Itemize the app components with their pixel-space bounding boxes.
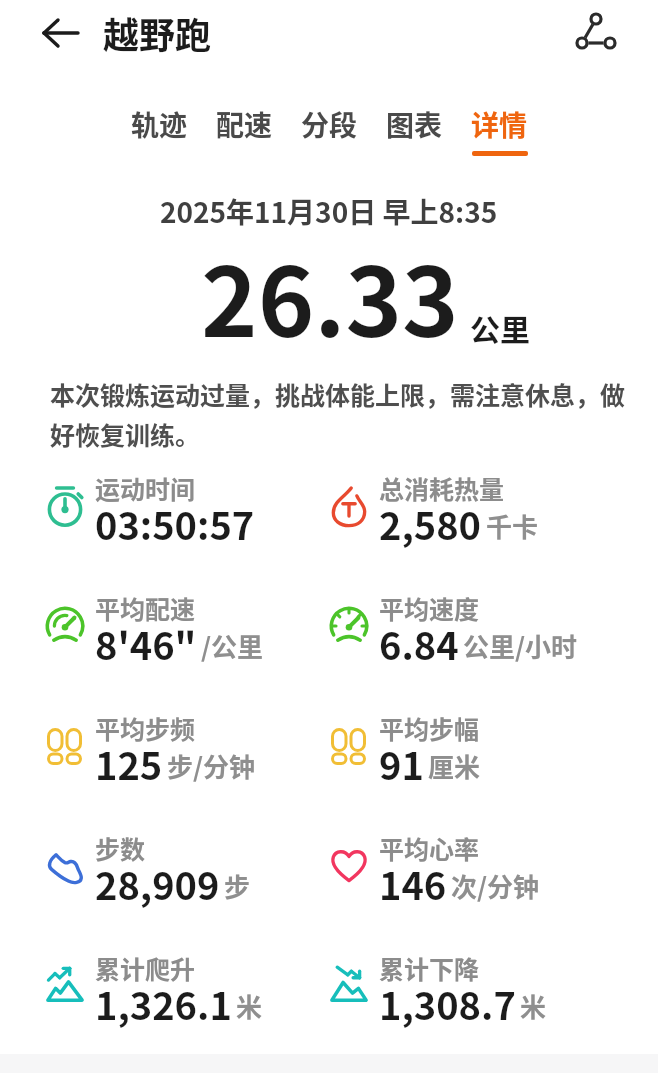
staticText: 146 — [379, 856, 447, 911]
staticText: 运动时间 — [95, 470, 196, 506]
staticText: 1,326.1 — [95, 976, 232, 1031]
staticText: 125 — [95, 736, 163, 791]
button[interactable]: 平均心率 — [330, 807, 658, 911]
staticText: 次/分钟 — [451, 867, 540, 905]
staticText: 本次锻炼运动过量，挑战体能上限，需注意休息，做 好恢复训练。 — [50, 376, 626, 452]
staticText: 分段 — [301, 104, 358, 145]
staticText: 28,909 — [95, 856, 220, 911]
staticText: 图表 — [386, 104, 443, 145]
staticText: 26.33 — [201, 226, 459, 365]
button[interactable] — [565, 0, 625, 66]
staticText: 配速 — [216, 104, 273, 145]
button[interactable]: 配速 — [216, 104, 273, 156]
staticText: 米 — [236, 987, 263, 1025]
staticText: 1,308.7 — [379, 976, 516, 1031]
staticText: 步/分钟 — [167, 747, 256, 785]
staticText: 平均步频 — [95, 710, 196, 746]
staticText: 厘米 — [428, 747, 481, 785]
staticText: 平均配速 — [95, 590, 196, 626]
button[interactable]: 累计下降 — [330, 927, 658, 1031]
staticText: /公里 — [201, 627, 264, 665]
staticText: 平均速度 — [379, 590, 480, 626]
staticText: 公里/小时 — [463, 627, 578, 665]
staticText: 千卡 — [486, 507, 539, 545]
button[interactable]: 步数 — [46, 807, 330, 911]
button[interactable]: 平均配速 — [46, 567, 330, 671]
button[interactable]: 平均步幅 — [330, 687, 658, 791]
staticText: 越野跑 — [103, 7, 212, 59]
button[interactable]: 图表 — [386, 104, 443, 156]
staticText: 2025年11月30日 早上8:35 — [160, 191, 498, 232]
staticText: 步数 — [95, 830, 146, 866]
staticText: 91 — [379, 736, 424, 791]
button[interactable]: 轨迹 — [131, 104, 188, 156]
staticText: 8'46" — [95, 616, 197, 671]
staticText: 公里 — [470, 306, 530, 349]
staticText: 03:50:57 — [95, 496, 255, 551]
staticText: 详情 — [471, 104, 528, 145]
staticText: 米 — [520, 987, 547, 1025]
staticText: 2,580 — [379, 496, 482, 551]
staticText: 平均步幅 — [379, 710, 480, 746]
staticText: 累计爬升 — [95, 950, 196, 986]
staticText: 总消耗热量 — [379, 470, 505, 506]
button[interactable]: 平均速度 — [330, 567, 658, 671]
button[interactable]: 运动时间 — [46, 447, 330, 551]
button[interactable] — [33, 0, 89, 66]
button[interactable]: 总消耗热量 — [330, 447, 658, 551]
button[interactable]: 分段 — [301, 104, 358, 156]
staticText: 累计下降 — [379, 950, 480, 986]
button[interactable]: 累计爬升 — [46, 927, 330, 1031]
staticText: 平均心率 — [379, 830, 480, 866]
staticText: 轨迹 — [131, 104, 188, 145]
button[interactable]: 详情 — [471, 104, 528, 156]
button[interactable]: 平均步频 — [46, 687, 330, 791]
staticText: 步 — [224, 867, 251, 905]
staticText: 6.84 — [379, 616, 459, 671]
